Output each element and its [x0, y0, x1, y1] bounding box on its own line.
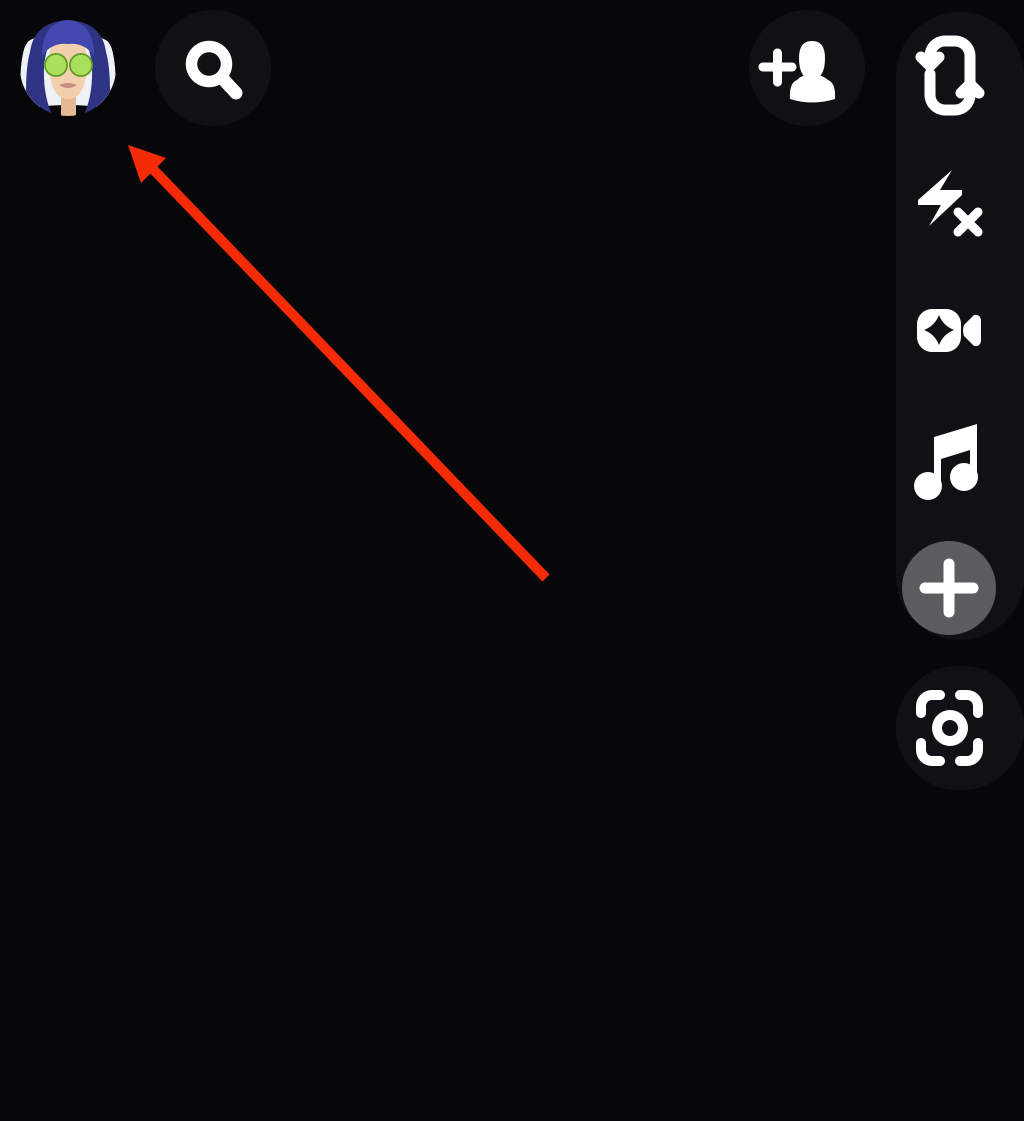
button[interactable]: Search	[155, 10, 271, 126]
button[interactable]: Add Friends	[749, 10, 865, 126]
button[interactable]: Effects	[904, 285, 994, 375]
button[interactable]: Add	[902, 541, 996, 635]
button[interactable]: Music	[904, 413, 994, 503]
button[interactable]: Scan	[896, 666, 1024, 790]
button[interactable]: Profile	[16, 16, 120, 120]
button[interactable]: Flip Camera	[904, 30, 994, 120]
button[interactable]: Flash Off	[904, 155, 994, 245]
